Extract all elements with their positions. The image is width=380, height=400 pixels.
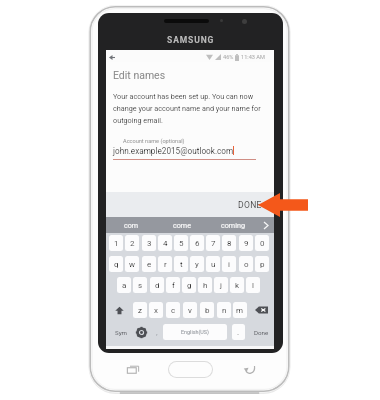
- button[interactable]: b: [200, 302, 214, 318]
- staticText: .: [237, 328, 240, 337]
- button[interactable]: Backspace: [251, 302, 271, 318]
- button[interactable]: 0: [255, 235, 269, 251]
- button[interactable]: Sym: [110, 324, 132, 340]
- staticText: ,: [156, 328, 158, 337]
- button[interactable]: 9: [239, 235, 253, 251]
- staticText: 2: [130, 239, 135, 248]
- staticText: k: [235, 281, 240, 290]
- button[interactable]: 1: [109, 235, 123, 251]
- button[interactable]: l: [246, 277, 260, 293]
- staticText: john.example2015@outlook.com: [113, 146, 234, 156]
- staticText: DONE: [238, 200, 262, 210]
- staticText: c: [171, 306, 176, 315]
- staticText: u: [211, 260, 216, 269]
- staticText: Edit names: [113, 69, 166, 81]
- staticText: h: [203, 281, 208, 290]
- button[interactable]: 4: [158, 235, 172, 251]
- other: Callout arrow: [258, 193, 308, 217]
- staticText: j: [220, 281, 222, 290]
- staticText: Account name (optional): [123, 138, 185, 145]
- staticText: 0: [260, 239, 265, 248]
- button[interactable]: a: [117, 277, 131, 293]
- button[interactable]: e: [142, 256, 156, 272]
- staticText: come: [173, 221, 191, 229]
- staticText: r: [164, 260, 167, 269]
- button[interactable]: 8: [222, 235, 236, 251]
- button[interactable]: k: [230, 277, 244, 293]
- button[interactable]: u: [206, 256, 220, 272]
- staticText: English(US): [181, 329, 209, 335]
- staticText: w: [129, 260, 136, 269]
- button[interactable]: 3: [142, 235, 156, 251]
- staticText: n: [222, 306, 227, 315]
- button[interactable]: s: [133, 277, 147, 293]
- button[interactable]: ,: [150, 324, 164, 340]
- staticText: z: [138, 306, 142, 315]
- button[interactable]: Recent apps: [122, 359, 143, 380]
- staticText: m: [236, 306, 244, 315]
- staticText: t: [180, 260, 183, 269]
- button[interactable]: 7: [206, 235, 220, 251]
- button[interactable]: r: [158, 256, 172, 272]
- button[interactable]: y: [190, 256, 204, 272]
- staticText: 46%: [223, 54, 234, 61]
- button[interactable]: w: [125, 256, 139, 272]
- button[interactable]: v: [183, 302, 197, 318]
- button[interactable]: x: [149, 302, 163, 318]
- button[interactable]: 6: [190, 235, 204, 251]
- button[interactable]: Keyboard settings: [132, 324, 150, 340]
- staticText: SAMSUNG: [167, 35, 215, 45]
- staticText: f: [172, 281, 175, 290]
- button[interactable]: i: [222, 256, 236, 272]
- button[interactable]: q: [109, 256, 123, 272]
- button[interactable]: c: [166, 302, 180, 318]
- staticText: Your account has been set up. You can no…: [113, 92, 268, 124]
- button[interactable]: m: [233, 302, 247, 318]
- button[interactable]: More suggestions: [258, 217, 274, 233]
- button[interactable]: g: [182, 277, 196, 293]
- staticText: 11:43 AM: [241, 54, 265, 61]
- button[interactable]: Back: [238, 359, 259, 380]
- button[interactable]: n: [217, 302, 231, 318]
- button[interactable]: Home: [168, 361, 213, 378]
- button[interactable]: f: [166, 277, 180, 293]
- button[interactable]: Shift: [109, 302, 130, 318]
- staticText: 7: [211, 239, 216, 248]
- staticText: Sym: [115, 329, 128, 336]
- staticText: s: [138, 281, 143, 290]
- button[interactable]: p: [255, 256, 269, 272]
- button[interactable]: 2: [125, 235, 139, 251]
- staticText: q: [114, 260, 119, 269]
- button[interactable]: come: [156, 217, 207, 233]
- button[interactable]: d: [150, 277, 164, 293]
- staticText: 6: [195, 239, 200, 248]
- staticText: a: [122, 281, 127, 290]
- staticText: y: [195, 260, 199, 269]
- staticText: l: [252, 281, 254, 290]
- button[interactable]: 5: [174, 235, 188, 251]
- staticText: o: [244, 260, 249, 269]
- staticText: 1: [114, 239, 119, 248]
- staticText: 3: [147, 239, 152, 248]
- staticText: Done: [254, 329, 269, 336]
- staticText: coming: [221, 221, 245, 229]
- button[interactable]: Done: [249, 324, 274, 340]
- button[interactable]: .: [232, 324, 245, 340]
- button[interactable]: DONE: [226, 192, 274, 217]
- staticText: v: [188, 306, 192, 315]
- button[interactable]: o: [239, 256, 253, 272]
- staticText: b: [205, 306, 210, 315]
- button[interactable]: coming: [207, 217, 258, 233]
- button[interactable]: com: [106, 217, 156, 233]
- staticText: x: [154, 306, 158, 315]
- button[interactable]: English(US): [163, 324, 227, 340]
- staticText: e: [147, 260, 152, 269]
- staticText: 8: [227, 239, 232, 248]
- staticText: com: [124, 221, 139, 229]
- button[interactable]: j: [214, 277, 228, 293]
- button[interactable]: z: [133, 302, 147, 318]
- button[interactable]: h: [198, 277, 212, 293]
- button[interactable]: t: [174, 256, 188, 272]
- staticText: 9: [244, 239, 249, 248]
- staticText: 4: [163, 239, 168, 248]
